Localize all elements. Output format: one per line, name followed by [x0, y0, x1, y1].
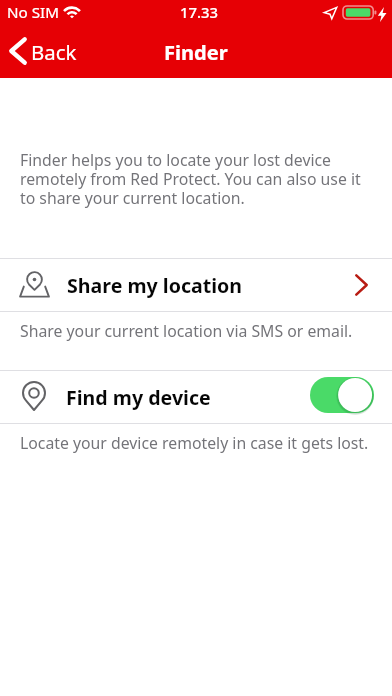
staticText: Find my device — [66, 384, 211, 411]
staticText: Share your current location via SMS or e… — [20, 320, 353, 342]
button[interactable]: Find my device — [0, 371, 392, 423]
button[interactable]: Back — [9, 37, 77, 65]
staticText: Locate your device remotely in case it g… — [20, 432, 369, 454]
button[interactable]: Find my device toggle — [310, 377, 374, 413]
staticText: Back — [31, 38, 77, 66]
staticText: Finder — [164, 39, 228, 66]
button[interactable]: Share my location — [0, 259, 392, 311]
other: Open — [355, 274, 368, 296]
staticText: No SIM — [7, 2, 59, 23]
staticText: 17.33 — [180, 2, 218, 22]
staticText: Share my location — [67, 272, 243, 299]
staticText: Finder helps you to locate your lost dev… — [20, 149, 368, 208]
